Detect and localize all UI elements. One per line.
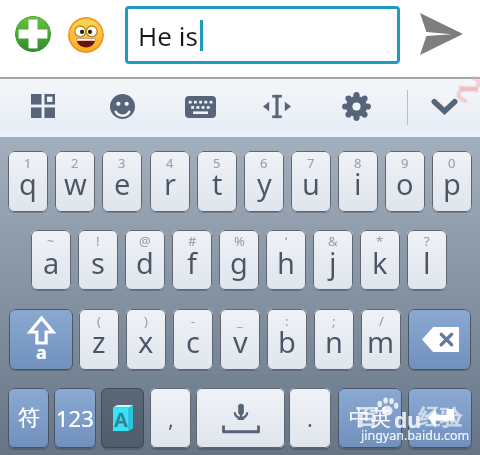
staticText: 1 [24, 154, 32, 172]
staticText: ? [424, 232, 430, 250]
staticText: a [43, 243, 60, 282]
staticText: i [354, 164, 362, 203]
staticText: a [36, 340, 47, 365]
button[interactable]: Panels [31, 94, 55, 118]
button[interactable]: Hide keyboard [429, 96, 460, 117]
button[interactable]: Emoticons [110, 94, 135, 119]
button[interactable]: 9 [385, 151, 425, 212]
button[interactable]: 8 [338, 151, 378, 212]
button[interactable]: 4 [150, 151, 190, 212]
button[interactable]: 7 [291, 151, 331, 212]
staticText: g [230, 243, 248, 282]
button[interactable]: 3 [102, 151, 142, 212]
staticText: 6 [260, 154, 268, 172]
button[interactable]: # [172, 230, 212, 290]
staticText: ~ [47, 232, 55, 250]
button[interactable]: . [289, 388, 331, 448]
staticText: p [443, 164, 461, 203]
staticText: f [187, 243, 197, 282]
staticText: x [138, 322, 154, 361]
staticText: m [367, 322, 395, 361]
staticText: 0 [448, 154, 456, 172]
staticText: - [191, 312, 196, 330]
button[interactable]: 123 [54, 388, 96, 448]
staticText: , [168, 403, 174, 433]
staticText: r [164, 164, 176, 203]
button[interactable]: 中英 [338, 388, 402, 448]
button[interactable]: Send [408, 4, 474, 66]
staticText: v [233, 322, 248, 361]
staticText: q [19, 164, 37, 203]
staticText: 2 [71, 154, 79, 172]
button[interactable]: / [361, 309, 401, 370]
staticText: e [114, 164, 131, 203]
staticText: @ [139, 232, 151, 250]
staticText: z [92, 322, 106, 361]
button[interactable] [196, 388, 285, 448]
staticText: & [328, 232, 338, 250]
button[interactable]: ; [314, 309, 354, 370]
button[interactable]: 符 [8, 388, 49, 448]
staticText: 百 [356, 404, 378, 432]
staticText: 4 [166, 154, 174, 172]
button[interactable] [408, 388, 472, 448]
staticText: 3 [118, 154, 126, 172]
staticText: 符 [18, 404, 40, 432]
staticText: ( [97, 312, 101, 330]
button[interactable]: & [313, 230, 353, 290]
button[interactable]: Move cursor [263, 93, 291, 120]
button[interactable]: _ [220, 309, 260, 370]
button[interactable]: He is [125, 6, 400, 64]
staticText: du [394, 406, 421, 435]
button[interactable]: ? [407, 230, 447, 290]
button[interactable]: A [101, 388, 144, 448]
button[interactable]: - [173, 309, 213, 370]
button[interactable]: Settings [343, 93, 370, 120]
staticText: He is [138, 18, 198, 53]
staticText: A [114, 406, 128, 432]
staticText: / [379, 312, 384, 330]
button[interactable]: : [267, 309, 307, 370]
staticText: ) [144, 312, 148, 330]
staticText: _ [237, 312, 243, 330]
button[interactable]: 2 [55, 151, 95, 212]
staticText: l [423, 243, 431, 282]
staticText: 5 [213, 154, 221, 172]
staticText: ! [96, 232, 100, 250]
staticText: u [302, 164, 320, 203]
button[interactable]: * [360, 230, 400, 290]
staticText: n [325, 322, 343, 361]
button[interactable]: 0 [432, 151, 472, 212]
button[interactable]: ‘ [266, 230, 306, 290]
staticText: ; [332, 312, 336, 330]
staticText: 中英 [349, 405, 391, 431]
button[interactable]: @ [125, 230, 165, 290]
staticText: # [188, 232, 197, 250]
staticText: . [307, 403, 313, 433]
button[interactable]: ~ [31, 230, 71, 290]
button[interactable]: ) [126, 309, 166, 370]
button[interactable]: 6 [244, 151, 284, 212]
staticText: 9 [401, 154, 409, 172]
staticText: 8 [354, 154, 362, 172]
staticText: w [64, 164, 87, 203]
button[interactable]: Add [15, 16, 51, 52]
button[interactable]: 5 [197, 151, 237, 212]
button[interactable]: ! [78, 230, 118, 290]
button[interactable]: 1 [8, 151, 48, 212]
button[interactable]: Keyboard [185, 96, 216, 118]
button[interactable]: Emoji [68, 17, 104, 53]
button[interactable]: a [9, 309, 73, 370]
staticText: * [376, 232, 384, 250]
button[interactable]: , [150, 388, 191, 448]
staticText: d [136, 243, 154, 282]
button[interactable]: ( [79, 309, 119, 370]
button[interactable]: % [219, 230, 259, 290]
button[interactable] [408, 309, 471, 370]
staticText: 7 [307, 154, 315, 172]
staticText: c [186, 322, 200, 361]
staticText: 123 [56, 403, 94, 433]
staticText: j [329, 243, 337, 282]
staticText: ‘ [285, 232, 288, 250]
staticText: b [278, 322, 296, 361]
